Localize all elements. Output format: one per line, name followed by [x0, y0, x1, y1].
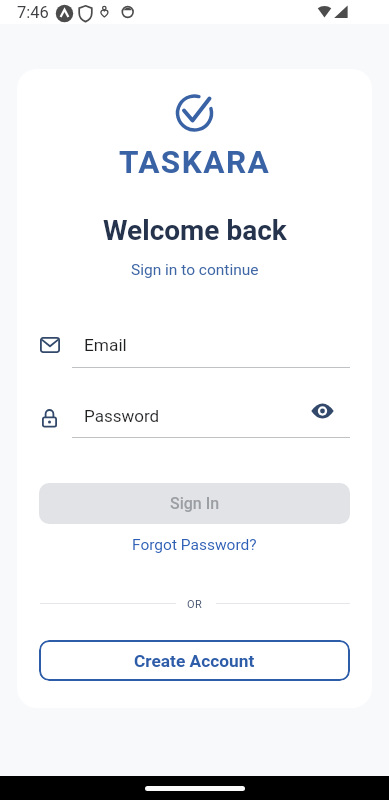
- button[interactable]: [33, 324, 357, 370]
- staticText: Sign in to continue: [131, 261, 259, 279]
- staticText: Sign In: [170, 494, 220, 513]
- staticText: Email: [84, 335, 127, 355]
- staticText: Create Account: [134, 651, 255, 671]
- button[interactable]: Sign In: [39, 483, 350, 524]
- staticText: Password: [84, 406, 160, 426]
- staticText: 7:46: [17, 3, 49, 22]
- button[interactable]: [33, 395, 357, 441]
- staticText: OR: [187, 598, 203, 611]
- staticText: TASKARA: [119, 144, 271, 181]
- button[interactable]: Create Account: [39, 640, 350, 681]
- staticText: Welcome back: [103, 214, 287, 247]
- button[interactable]: [303, 397, 341, 425]
- button[interactable]: Forgot Password?: [132, 531, 257, 559]
- staticText: Forgot Password?: [132, 536, 257, 554]
